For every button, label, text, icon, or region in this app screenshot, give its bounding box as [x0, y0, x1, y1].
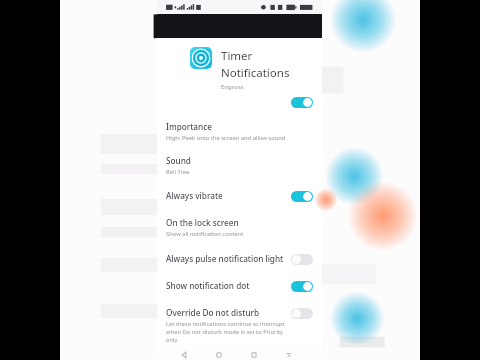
button[interactable]: Always vibrate	[166, 181, 313, 208]
staticText: Let these notifications continue to inte…	[166, 320, 285, 344]
staticText: Bell Tree	[166, 168, 190, 176]
staticText: Always vibrate	[166, 190, 223, 201]
staticText: Always pulse notification light	[166, 253, 284, 264]
staticText: Importance	[166, 121, 212, 132]
button[interactable]: Override Do not disturb	[166, 298, 313, 350]
button[interactable]: Toggle off	[291, 308, 313, 319]
button[interactable]: Importance	[166, 113, 313, 147]
button[interactable]: Show notification dot	[166, 271, 313, 298]
staticText: Show notification dot	[166, 280, 250, 291]
button[interactable]: Sound	[166, 147, 313, 181]
staticText: Timer	[221, 48, 253, 64]
staticText: Notifications	[221, 65, 290, 81]
button[interactable]: Toggle on	[291, 191, 313, 202]
staticText: High: Peek onto the screen and allow sou…	[166, 134, 286, 142]
button[interactable]: Toggle on	[291, 281, 313, 292]
button[interactable]: On the lock screen	[166, 208, 313, 244]
button[interactable]: Always pulse notification light	[166, 244, 313, 271]
staticText: Engross	[221, 83, 244, 91]
staticText: Show all notification content	[166, 230, 244, 238]
button[interactable]: Recents	[249, 350, 265, 360]
staticText: On the lock screen	[166, 217, 239, 228]
button[interactable]: Back	[179, 350, 195, 360]
button[interactable]: Toggle on	[291, 97, 313, 108]
button[interactable]: Home	[214, 350, 230, 360]
staticText: Sound	[166, 155, 191, 166]
button[interactable]: Hide navigation bar	[284, 350, 300, 360]
button[interactable]: Allow notifications	[157, 91, 322, 113]
button[interactable]: Toggle off	[291, 254, 313, 265]
staticText: Override Do not disturb	[166, 307, 260, 318]
